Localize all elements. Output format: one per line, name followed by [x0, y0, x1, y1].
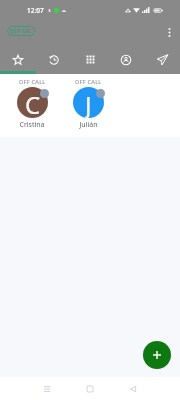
staticText: OFF CALL: [75, 78, 102, 85]
button[interactable]: Favourites: [0, 45, 36, 74]
staticText: J: [85, 88, 92, 118]
button[interactable]: Contacts: [108, 45, 144, 74]
staticText: DIT UC: [10, 27, 32, 35]
button[interactable]: Home: [79, 378, 101, 400]
staticText: C: [25, 88, 41, 118]
button[interactable]: Recent calls: [36, 45, 72, 74]
staticText: OFF CALL: [19, 78, 46, 85]
staticText: Julián: [79, 120, 98, 130]
button[interactable]: Dialpad: [72, 45, 108, 74]
button[interactable]: Back: [122, 378, 144, 400]
button[interactable]: Recent apps: [36, 378, 58, 400]
button[interactable]: DIT UC: [7, 26, 35, 36]
button[interactable]: Messages: [144, 45, 180, 74]
button[interactable]: OFF CALL: [4, 74, 60, 137]
button[interactable]: More options: [158, 21, 180, 43]
button[interactable]: Add contact: [143, 341, 171, 369]
staticText: 12:07: [27, 6, 44, 15]
button[interactable]: OFF CALL: [60, 74, 116, 137]
staticText: Cristina: [19, 120, 45, 130]
